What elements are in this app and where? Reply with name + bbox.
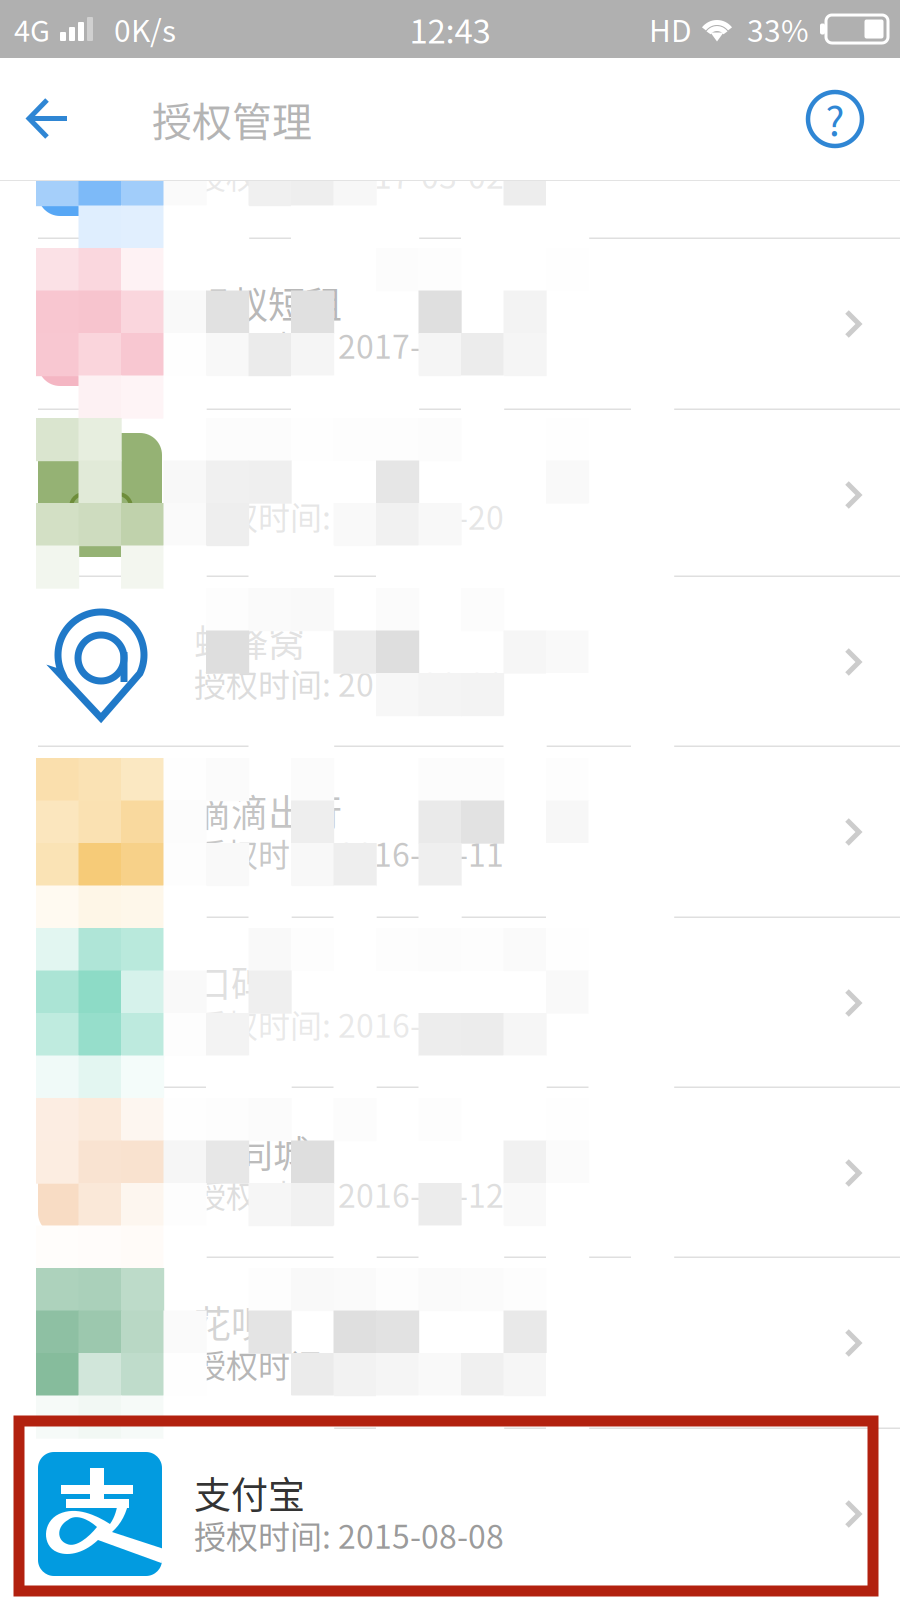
staticText: 授权时间: 2017-01-01 [194, 660, 504, 706]
staticText: 授权时间: 2017-01-20 [194, 493, 504, 539]
staticText: 授权时间: 2016-08-21 [194, 1001, 504, 1047]
staticText: 授权时间: 2015-08-08 [194, 1512, 504, 1558]
staticText: 4G [14, 8, 50, 50]
button[interactable]: 口碑 [0, 918, 900, 1088]
staticText: 33% [747, 7, 809, 51]
staticText: 授权时间: 2016-09-11 [194, 830, 504, 876]
button[interactable]: 美团 [0, 410, 900, 580]
staticText: 支付宝 [194, 1466, 305, 1520]
staticText: 12:43 [409, 5, 490, 53]
staticText: 滴滴出行 [194, 784, 342, 838]
button[interactable]: 支付宝 [0, 1429, 900, 1599]
staticText: 微博 [194, 106, 268, 160]
staticText: 授权时间: 2015-09-06 [194, 1341, 504, 1387]
staticText: 授权时间: 2016-07-12 [194, 1171, 504, 1217]
staticText: 花呗 [194, 1295, 268, 1349]
button[interactable]: 58同城 [0, 1088, 900, 1258]
staticText: 蚂蜂窝 [194, 614, 305, 668]
staticText: 58同城 [194, 1125, 310, 1179]
staticText: 美团 [194, 447, 268, 501]
staticText: 蚂蚁短租 [194, 276, 342, 330]
staticText: 口碑 [194, 955, 268, 1009]
button[interactable]: 滴滴出行 [0, 747, 900, 917]
button[interactable]: 蚂蜂窝 [0, 577, 900, 747]
button[interactable]: Help [785, 58, 885, 180]
button[interactable]: 蚂蚁短租 [0, 239, 900, 409]
button[interactable]: 微博 [0, 69, 900, 239]
staticText: 授权管理 [152, 90, 312, 148]
staticText: HD [649, 7, 692, 51]
staticText: 授权时间: 2017-03-02 [194, 152, 504, 198]
staticText: 0K/s [114, 7, 176, 51]
staticText: 授权时间: 2017-02-17 [194, 322, 504, 368]
button[interactable]: Back [0, 58, 96, 180]
button[interactable]: 花呗 [0, 1258, 900, 1428]
staticText: ? [825, 89, 844, 147]
